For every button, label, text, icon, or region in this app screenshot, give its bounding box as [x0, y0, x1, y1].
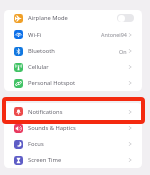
staticText: Antonei94	[101, 31, 127, 38]
button[interactable]: Bluetooth	[4, 43, 142, 59]
button[interactable]: Airplane Mode	[4, 10, 142, 26]
button[interactable]: Notifications	[4, 103, 142, 120]
button[interactable]: Sounds & Haptics	[4, 120, 142, 136]
staticText: Personal Hotspot	[28, 79, 76, 87]
staticText: Screen Time	[28, 156, 62, 164]
staticText: Sounds & Haptics	[28, 124, 76, 132]
button[interactable]: Cellular	[4, 59, 142, 75]
staticText: Notifications	[28, 108, 63, 116]
staticText: Bluetooth	[28, 47, 55, 55]
staticText: Wi-Fi	[28, 31, 42, 39]
other: Notifications highlight	[2, 97, 145, 124]
button[interactable]: Screen Time	[4, 152, 142, 168]
button[interactable]: Focus	[4, 136, 142, 152]
staticText: Focus	[28, 140, 44, 148]
staticText: Cellular	[28, 63, 49, 71]
staticText: Airplane Mode	[28, 14, 68, 22]
button[interactable]: Personal Hotspot	[4, 75, 142, 91]
button[interactable]: Wi-Fi	[4, 26, 142, 43]
staticText: On	[119, 48, 127, 55]
